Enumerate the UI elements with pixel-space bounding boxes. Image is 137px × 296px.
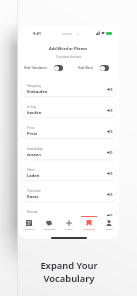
button[interactable]: Play pronunciation — [107, 150, 112, 155]
staticText: Expand Your Vocabulary — [40, 259, 98, 285]
button[interactable]: Create — [59, 216, 79, 234]
staticText: Shopping — [27, 84, 41, 88]
button[interactable]: knowledge — [23, 145, 115, 159]
button[interactable]: Play pronunciation — [107, 213, 112, 218]
button[interactable]: to buy — [23, 103, 115, 117]
staticText: Dictionary — [23, 227, 35, 230]
staticText: Einkaufen — [27, 89, 48, 95]
staticText: 9:41 — [33, 31, 41, 36]
staticText: Price — [27, 126, 35, 130]
button[interactable]: Store — [23, 166, 115, 180]
button[interactable]: Play pronunciation — [107, 129, 112, 134]
button[interactable]: Hide Translation — [24, 65, 63, 71]
staticText: Kasse — [27, 194, 39, 200]
staticText: Hide Translation — [24, 66, 47, 70]
button[interactable]: Play pronunciation — [107, 192, 112, 197]
staticText: knowledge — [27, 147, 43, 151]
staticText: Laden — [27, 173, 40, 179]
button[interactable]: Vocabulary — [39, 216, 59, 234]
staticText: to buy — [27, 105, 37, 109]
staticText: kaufen — [27, 110, 42, 116]
staticText: Flashcards — [83, 227, 95, 230]
staticText: Hide Word — [78, 66, 93, 70]
button[interactable]: Play pronunciation — [107, 108, 112, 113]
staticText: Preis — [27, 131, 38, 137]
button[interactable]: Checkout — [23, 187, 115, 201]
button[interactable]: Price — [23, 124, 115, 138]
staticText: Add Word or Phrase — [49, 46, 88, 51]
staticText: Vocabulary — [43, 227, 56, 230]
staticText: Can start the text — [56, 55, 82, 59]
button[interactable]: Flashcards — [79, 216, 99, 234]
button[interactable]: Dictionary — [18, 216, 39, 234]
staticText: Profile — [105, 227, 113, 230]
button[interactable]: Hide Word — [78, 65, 109, 71]
staticText: Store — [27, 168, 35, 172]
staticText: Receipt — [27, 210, 38, 214]
button[interactable]: Play pronunciation — [107, 171, 112, 176]
button[interactable]: Shopping — [23, 82, 115, 96]
button[interactable]: Receipt — [23, 208, 115, 222]
staticText: Create — [65, 227, 73, 230]
staticText: Beleg — [27, 215, 39, 221]
staticText: wissen — [27, 152, 41, 158]
button[interactable]: Play pronunciation — [107, 87, 112, 92]
staticText: Checkout — [27, 189, 41, 193]
button[interactable]: Profile — [99, 216, 119, 234]
